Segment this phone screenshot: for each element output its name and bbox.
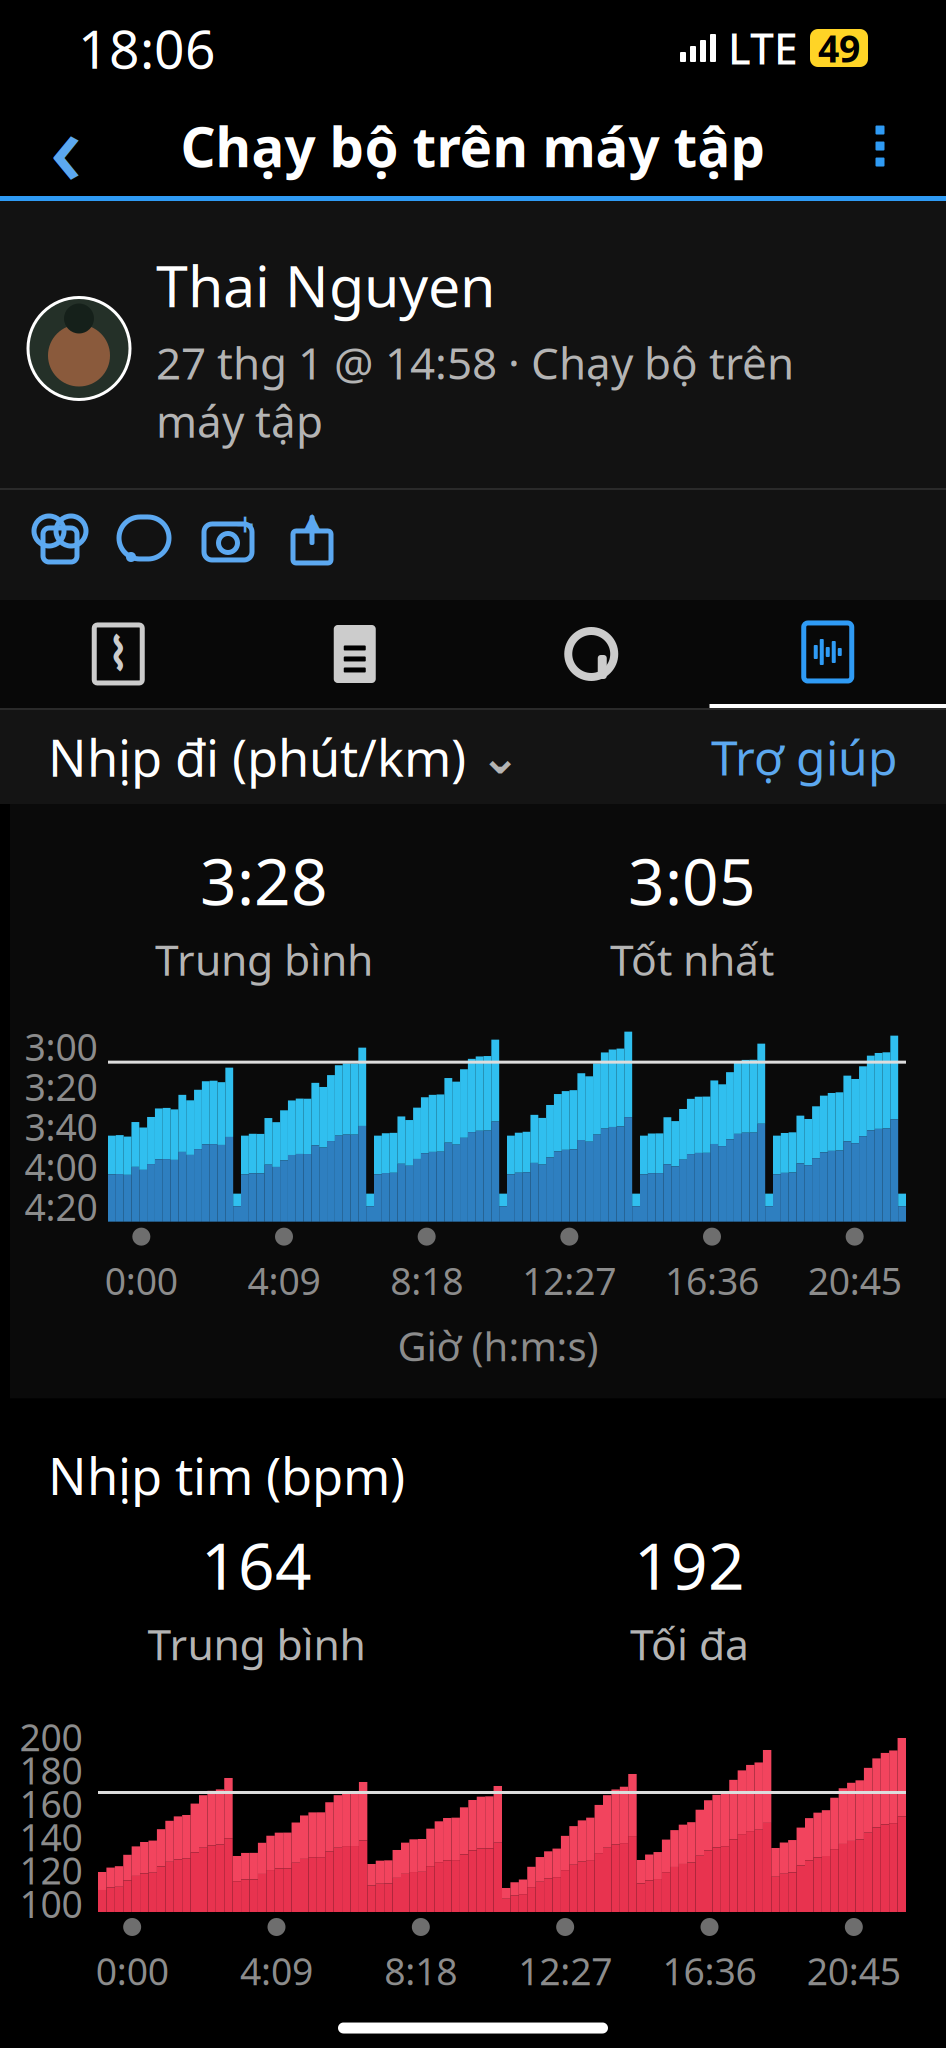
button[interactable]: Map [0,600,236,708]
staticText: 160 [19,1779,82,1812]
staticText: 164 [201,1522,312,1607]
staticText: Tối đa [630,1615,749,1672]
staticText: 3:00 [24,1022,97,1062]
staticText: 192 [634,1522,745,1607]
staticText: Tốt nhất [610,931,774,988]
staticText: 8:18 [384,1946,457,1996]
staticText: Giờ (h:m:s) [397,1319,598,1372]
button[interactable]: Charts [709,600,946,708]
staticText: Nhịp đi (phút/km) [48,723,466,791]
staticText: 180 [19,1745,82,1779]
staticText: Trung bình [155,931,373,988]
staticText: ‹ [49,79,82,213]
staticText: 200 [19,1712,82,1745]
staticText: 4:09 [247,1256,320,1305]
staticText: 3:05 [628,838,756,923]
staticText: 3:40 [24,1102,97,1142]
button[interactable]: Like [18,490,102,586]
staticText: 49 [818,23,860,73]
staticText: 8:18 [390,1256,463,1305]
staticText: 27 thg 1 @ 14:58 · Chạy bộ trên máy tập [156,333,794,450]
staticText: 20:45 [808,1256,902,1305]
staticText: Trợ giúp [711,725,898,789]
staticText: ⌄ [480,730,520,784]
staticText: 3:20 [24,1062,97,1102]
staticText: 16:36 [662,1946,756,1996]
staticText: + [236,503,254,545]
button[interactable]: Nhịp đi (phút/km) [48,723,520,791]
staticText: 18:06 [78,13,216,83]
button[interactable]: Add photo [186,490,270,586]
staticText: Nhịp tim (bpm) [48,1442,405,1509]
staticText: ⌇ [107,628,129,680]
staticText: 3:28 [200,838,328,923]
staticText: 4:20 [24,1182,97,1222]
button[interactable]: More options [832,98,928,194]
staticText: 0:00 [96,1946,169,1996]
staticText: ▲ [304,508,320,532]
staticText: Chạy bộ trên máy tập [180,110,765,182]
staticText: LTE [728,20,798,76]
button[interactable]: Back [18,98,114,194]
staticText: 12:27 [522,1256,616,1305]
staticText: 20:45 [807,1946,901,1996]
staticText: Giờ (h:m:s) [392,2010,593,2048]
staticText: 100 [19,1879,82,1912]
button[interactable]: Comment [102,490,186,586]
staticText: 12:27 [518,1946,612,1996]
button[interactable]: Laps [473,600,709,708]
staticText: 16:36 [665,1256,759,1305]
button[interactable]: Details [236,600,473,708]
staticText: Trung bình [147,1615,365,1672]
staticText: 120 [19,1845,82,1879]
button[interactable]: Share [270,490,354,586]
staticText: 140 [19,1812,82,1845]
button[interactable]: Trợ giúp [711,717,898,797]
staticText: 4:00 [24,1142,97,1182]
staticText: 4:09 [240,1946,313,1996]
staticText: 0:00 [105,1256,178,1305]
staticText: Thai Nguyen [156,247,495,323]
